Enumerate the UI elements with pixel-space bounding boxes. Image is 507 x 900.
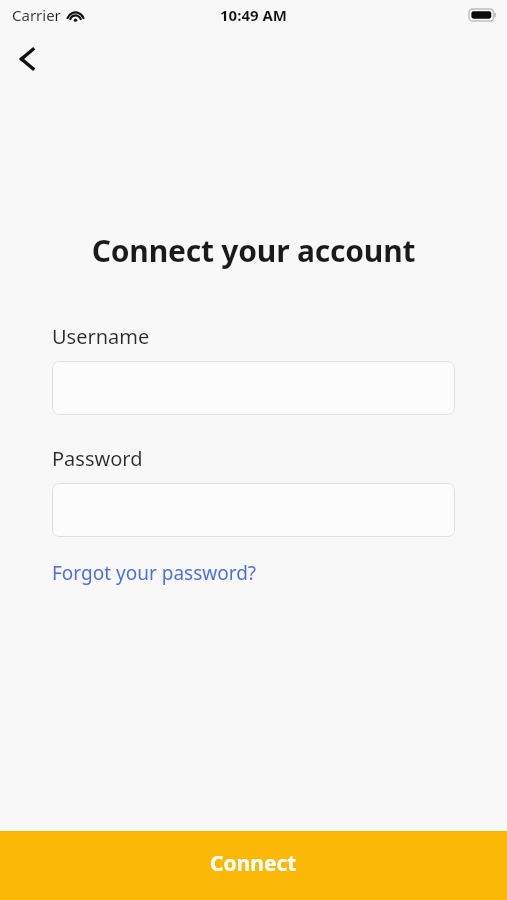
staticText: Carrier: [12, 5, 61, 25]
button[interactable]: Username input field: [52, 361, 455, 415]
staticText: Forgot your password?: [52, 560, 257, 586]
staticText: Username: [52, 323, 150, 350]
button[interactable]: Connect: [0, 831, 507, 900]
staticText: Connect: [210, 849, 297, 878]
button[interactable]: Forgot your password?: [52, 556, 257, 590]
staticText: Password: [52, 445, 143, 472]
staticText: 10:49 AM: [220, 5, 287, 25]
button[interactable]: Back: [6, 36, 52, 82]
button[interactable]: Password input field: [52, 483, 455, 537]
staticText: Connect your account: [0, 230, 507, 271]
